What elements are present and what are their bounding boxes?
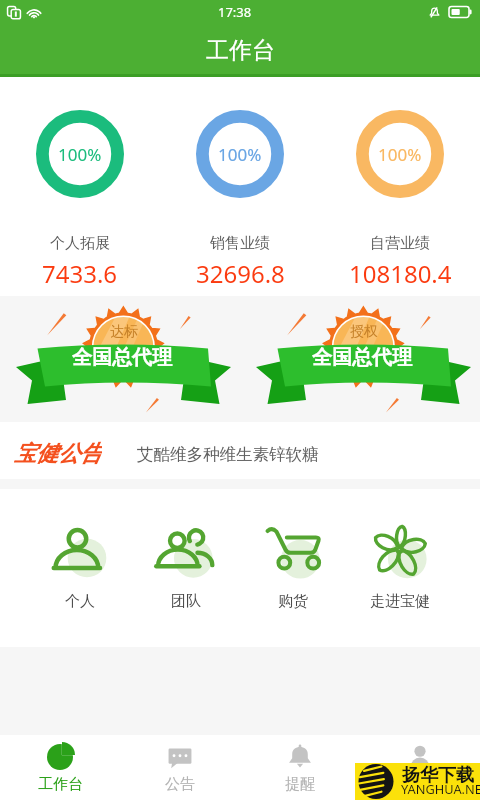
button[interactable]: 提醒 bbox=[240, 735, 360, 800]
staticText: 公告 bbox=[165, 775, 195, 794]
staticText: 108180.4 bbox=[349, 257, 452, 290]
staticText: 个人拓展 bbox=[50, 234, 110, 253]
staticText: 全国总代理 bbox=[312, 345, 412, 370]
button[interactable]: 走进宝健 bbox=[346, 489, 453, 647]
staticText: 提醒 bbox=[285, 775, 315, 794]
staticText: 17:38 bbox=[218, 3, 252, 21]
staticText: 宝健公告 bbox=[14, 440, 102, 466]
staticText: 艾酷维多种维生素锌软糖 bbox=[137, 444, 319, 465]
staticText: 自营业绩 bbox=[370, 234, 430, 253]
button[interactable]: 100% bbox=[160, 77, 320, 296]
staticText: 我的 bbox=[405, 775, 435, 794]
button[interactable]: 100% bbox=[0, 77, 160, 296]
button[interactable]: 我的 bbox=[360, 735, 480, 800]
staticText: 32696.8 bbox=[196, 257, 285, 290]
staticText: 工作台 bbox=[206, 36, 275, 65]
button[interactable]: 100% bbox=[320, 77, 480, 296]
staticText: 100% bbox=[378, 143, 422, 166]
button[interactable]: 购货 bbox=[239, 489, 346, 647]
staticText: 达标 bbox=[110, 323, 138, 341]
staticText: 销售业绩 bbox=[210, 234, 270, 253]
staticText: 个人 bbox=[65, 592, 95, 611]
staticText: 授权 bbox=[350, 323, 378, 341]
button[interactable]: 达标 bbox=[0, 296, 240, 422]
button[interactable]: 个人 bbox=[27, 489, 133, 647]
staticText: 购货 bbox=[278, 592, 308, 611]
staticText: 走进宝健 bbox=[370, 592, 430, 611]
button[interactable]: 宝健公告 bbox=[0, 422, 480, 479]
button[interactable]: 工作台 bbox=[0, 735, 120, 800]
staticText: 团队 bbox=[171, 592, 201, 611]
button[interactable]: 团队 bbox=[133, 489, 239, 647]
button[interactable]: 公告 bbox=[120, 735, 240, 800]
staticText: 工作台 bbox=[38, 775, 83, 794]
staticText: 全国总代理 bbox=[72, 345, 172, 370]
staticText: 100% bbox=[58, 143, 102, 166]
staticText: 100% bbox=[218, 143, 262, 166]
staticText: 7433.6 bbox=[42, 257, 118, 290]
button[interactable]: 授权 bbox=[240, 296, 480, 422]
staticText: 扬华下载 bbox=[402, 764, 474, 787]
staticText: YANGHUA.NET bbox=[401, 780, 480, 797]
